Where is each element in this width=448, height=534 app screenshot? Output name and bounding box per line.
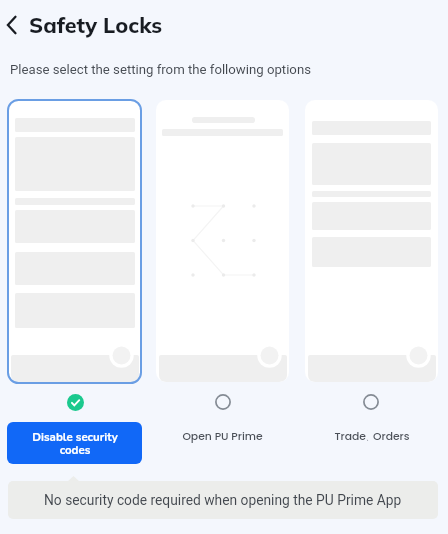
staticText: No security code required when opening t… [44,492,402,508]
button[interactable]: Disable security codes, selected [64,391,86,413]
staticText: Disable security codes [20,429,130,458]
staticText: Please select the setting from the follo… [10,62,311,77]
button[interactable] [8,100,141,382]
staticText: Safety Locks [29,11,163,38]
button[interactable]: Back [0,11,163,38]
button[interactable]: Trade、Orders [305,429,438,455]
button[interactable]: No security code required when opening t… [8,481,438,519]
button[interactable] [305,100,438,382]
button[interactable] [156,100,289,382]
staticText: Trade、Orders [334,429,410,444]
staticText: Open PU Prime [182,429,263,444]
button[interactable]: Open PU Prime [212,391,234,413]
button[interactable]: Disable security codes [7,422,142,464]
button[interactable]: Trade, Orders [360,391,382,413]
button[interactable]: Open PU Prime [156,429,289,455]
